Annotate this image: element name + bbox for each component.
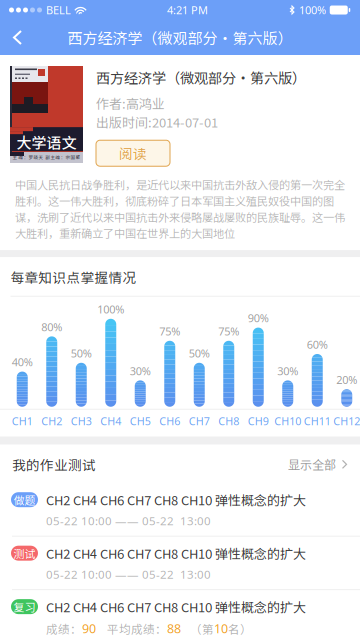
staticText: 每章知识点掌握情况 [10, 267, 136, 287]
staticText: 我的作业测试 [12, 454, 96, 474]
staticText: 西方经济学（微观部分·第六版） [96, 67, 306, 88]
staticText: 平均成绩： [107, 620, 167, 637]
staticText: 60% [307, 337, 328, 352]
staticText: 10 [214, 620, 228, 637]
staticText: 显示全部 [288, 456, 336, 473]
staticText: 中国人民抗日战争胜利，是近代以来中国抗击外敌入侵的第一次完全胜利。这一伟大胜利，… [15, 176, 345, 241]
staticText: 50% [189, 346, 210, 361]
staticText: 大学语文 [16, 131, 76, 153]
staticText: 西方经济学（微观部分·第六版） [67, 27, 292, 48]
staticText: 30% [277, 363, 298, 378]
staticText: 90% [248, 311, 269, 326]
button[interactable]: Back [4, 20, 34, 55]
staticText: CH5 [130, 414, 151, 428]
staticText: 做题 [13, 492, 35, 508]
staticText: 出版时间:2014-07-01 [96, 112, 218, 131]
staticText: 主 编：罗晓天 副主编：宗国聚 [12, 154, 80, 160]
button[interactable]: 做题 [0, 483, 360, 536]
staticText: 复习 [13, 599, 35, 615]
staticText: 88 [167, 620, 181, 637]
staticText: 80% [41, 319, 62, 334]
staticText: 75% [218, 324, 239, 339]
button[interactable]: 复习 [0, 590, 360, 639]
staticText: 100% [299, 2, 326, 17]
staticText: CH10 [274, 414, 301, 428]
staticText: CH3 [71, 414, 92, 428]
staticText: 50% [71, 346, 92, 361]
staticText: 30% [130, 363, 151, 378]
staticText: 100% [97, 302, 124, 317]
staticText: CH2 CH4 CH6 CH7 CH8 CH10 弹性概念的扩大 [46, 490, 306, 509]
staticText: CH1 [12, 414, 33, 428]
button[interactable]: 显示全部 [288, 456, 348, 473]
staticText: CH9 [248, 414, 269, 428]
staticText: 90 [82, 620, 96, 637]
staticText: 名） [228, 620, 252, 637]
staticText: 05-22 10:00 —— 05-22 13:00 [46, 566, 211, 582]
staticText: 4:21 PM [167, 2, 208, 17]
staticText: CH2 CH4 CH6 CH7 CH8 CH10 弹性概念的扩大 [46, 544, 306, 562]
button[interactable]: 阅读 [96, 140, 170, 166]
staticText: 测试 [13, 545, 35, 561]
staticText: CH4 [100, 414, 121, 428]
staticText: 作者:高鸿业 [96, 94, 165, 112]
staticText: BELL [46, 2, 71, 17]
staticText: CH2 CH4 CH6 CH7 CH8 CH10 弹性概念的扩大 [46, 597, 306, 616]
staticText: CH12 [333, 414, 360, 428]
staticText: 05-22 10:00 —— 05-22 13:00 [46, 513, 211, 529]
staticText: 成绩： [46, 620, 82, 637]
staticText: 阅读 [119, 143, 147, 163]
staticText: CH7 [189, 414, 210, 428]
staticText: 20% [336, 372, 357, 387]
staticText: CH11 [304, 414, 331, 428]
staticText: 75% [159, 324, 180, 339]
staticText: 40% [12, 355, 33, 370]
staticText: CH2 [41, 414, 62, 428]
button[interactable]: 测试 [0, 537, 360, 589]
staticText: CH8 [218, 414, 239, 428]
staticText: （第 [190, 620, 214, 637]
staticText: CH6 [159, 414, 180, 428]
